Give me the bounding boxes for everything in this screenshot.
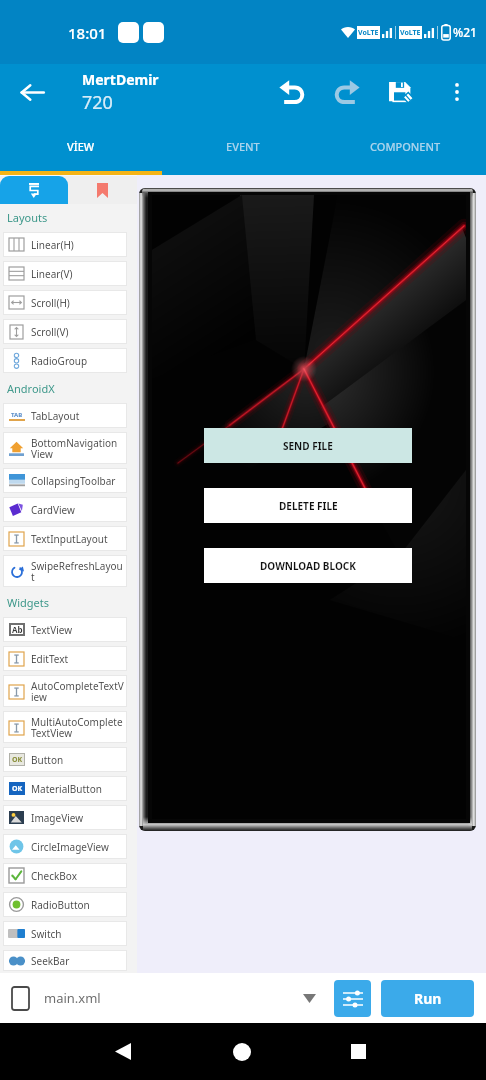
staticText: Layouts [7, 210, 48, 225]
button[interactable]: EditText [3, 646, 127, 671]
button[interactable]: AutoCompleteTextView [3, 675, 127, 707]
staticText: AndroidX [7, 381, 55, 396]
staticText: CollapsingToolbar [31, 474, 116, 488]
button[interactable]: OK [3, 776, 127, 801]
button[interactable]: EVENT [162, 132, 324, 171]
button[interactable]: CardView [3, 497, 127, 522]
staticText: VoLTE [358, 28, 379, 38]
button[interactable]: Run [381, 980, 474, 1017]
button[interactable]: More options [428, 63, 486, 121]
button[interactable]: Switch [3, 921, 127, 946]
staticText: Run [414, 989, 442, 1008]
button[interactable]: SEND FILE [204, 428, 412, 463]
button[interactable]: VİEW [0, 132, 162, 171]
staticText: %21 [453, 24, 477, 40]
staticText: EVENT [226, 139, 260, 154]
button[interactable]: Scroll(V) [3, 319, 127, 344]
button[interactable]: COMPONENT [324, 132, 486, 171]
button[interactable]: OK [3, 747, 127, 772]
staticText: Widgets [7, 595, 50, 610]
staticText: MultiAutoCompleteTextView [31, 715, 125, 740]
button[interactable]: DELETE FILE [204, 488, 412, 523]
staticText: SwipeRefreshLayout [31, 559, 125, 584]
button[interactable]: Recents [329, 1023, 387, 1080]
staticText: BottomNavigation View [31, 436, 125, 461]
staticText: CardView [31, 503, 75, 517]
button[interactable]: Settings [334, 980, 371, 1017]
button[interactable]: Redo [320, 65, 374, 119]
button[interactable]: Widgets palette [0, 176, 68, 204]
staticText: DELETE FILE [279, 499, 338, 513]
staticText: Ab [12, 624, 23, 635]
button[interactable]: Save [374, 65, 428, 119]
staticText: MertDemir [82, 70, 159, 89]
button[interactable]: CircleImageView [3, 834, 127, 859]
staticText: 18:01 [68, 23, 107, 43]
staticText: VoLTE [400, 28, 421, 38]
staticText: Linear(V) [31, 267, 73, 281]
button[interactable]: Ab [3, 617, 127, 642]
button[interactable]: BottomNavigation View [3, 432, 127, 464]
staticText: Scroll(V) [31, 325, 69, 339]
staticText: ImageView [31, 811, 84, 825]
button[interactable]: Home [213, 1023, 271, 1080]
button[interactable]: ImageView [3, 805, 127, 830]
button[interactable]: TextInputLayout [3, 526, 127, 551]
staticText: MaterialButton [31, 782, 102, 796]
staticText: OK [12, 755, 23, 765]
button[interactable]: RadioGroup [3, 348, 127, 373]
button[interactable]: Saved views [68, 176, 137, 204]
button[interactable]: Linear(V) [3, 261, 127, 286]
button[interactable]: RadioButton [3, 892, 127, 917]
button[interactable]: Scroll(H) [3, 290, 127, 315]
staticText: CircleImageView [31, 840, 109, 854]
button[interactable]: TAB [3, 403, 127, 428]
staticText: Button [31, 753, 64, 767]
staticText: EditText [31, 652, 69, 666]
button[interactable]: Undo [264, 64, 320, 120]
staticText: main.xml [44, 989, 101, 1007]
staticText: TextInputLayout [31, 532, 108, 546]
staticText: OK [12, 784, 23, 794]
staticText: AutoCompleteTextView [31, 679, 125, 704]
staticText: SEND FILE [283, 439, 333, 453]
button[interactable]: DOWNLOAD BLOCK [204, 548, 412, 583]
staticText: Switch [31, 927, 62, 941]
staticText: DOWNLOAD BLOCK [260, 559, 356, 573]
button[interactable]: CollapsingToolbar [3, 468, 127, 493]
button[interactable]: Back [9, 69, 55, 115]
staticText: TextView [31, 623, 73, 637]
button[interactable]: CheckBox [3, 863, 127, 888]
button[interactable]: Back [94, 1023, 152, 1080]
button[interactable]: Select file [296, 985, 322, 1011]
staticText: COMPONENT [370, 139, 441, 154]
button[interactable]: SeekBar [3, 950, 127, 971]
button[interactable]: SwipeRefreshLayout [3, 555, 127, 587]
staticText: RadioButton [31, 898, 90, 912]
staticText: 720 [82, 90, 113, 115]
button[interactable]: MultiAutoCompleteTextView [3, 711, 127, 743]
staticText: TAB [11, 411, 23, 419]
staticText: SeekBar [31, 954, 70, 968]
button[interactable]: Linear(H) [3, 232, 127, 257]
staticText: RadioGroup [31, 354, 88, 368]
staticText: TabLayout [31, 409, 80, 423]
staticText: CheckBox [31, 869, 77, 883]
staticText: Scroll(H) [31, 296, 70, 310]
staticText: VİEW [67, 139, 95, 154]
staticText: Linear(H) [31, 238, 74, 252]
